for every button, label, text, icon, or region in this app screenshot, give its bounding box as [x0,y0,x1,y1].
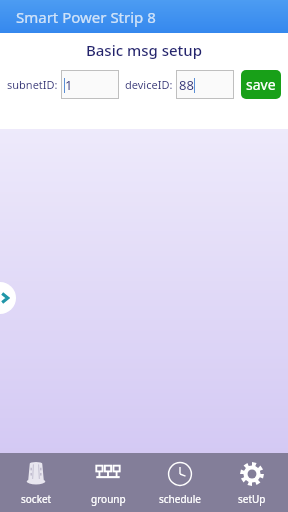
other: grounp [95,461,121,487]
button[interactable]: setUp [216,453,288,512]
button[interactable]: grounp [72,453,144,512]
button[interactable]: schedule [144,453,216,512]
button[interactable]: 88 [176,70,234,99]
staticText: Smart Power Strip 8 [16,7,156,27]
staticText: socket [21,492,52,506]
other: schedule [167,461,193,487]
staticText: deviceID: [125,77,173,92]
staticText: grounp [91,492,126,506]
staticText: 1 [65,76,73,94]
staticText: setUp [238,492,266,506]
button[interactable]: socket [0,453,72,512]
button[interactable]: 1 [61,70,119,99]
staticText: save [246,75,276,94]
staticText: schedule [159,492,201,506]
other: socket [23,461,49,487]
staticText: Basic msg setup [0,40,288,60]
staticText: 88 [179,76,194,94]
staticText: subnetID: [7,77,58,92]
other: setUp [239,461,265,487]
button[interactable]: save [241,70,281,99]
button[interactable]: Open panel [0,282,16,314]
